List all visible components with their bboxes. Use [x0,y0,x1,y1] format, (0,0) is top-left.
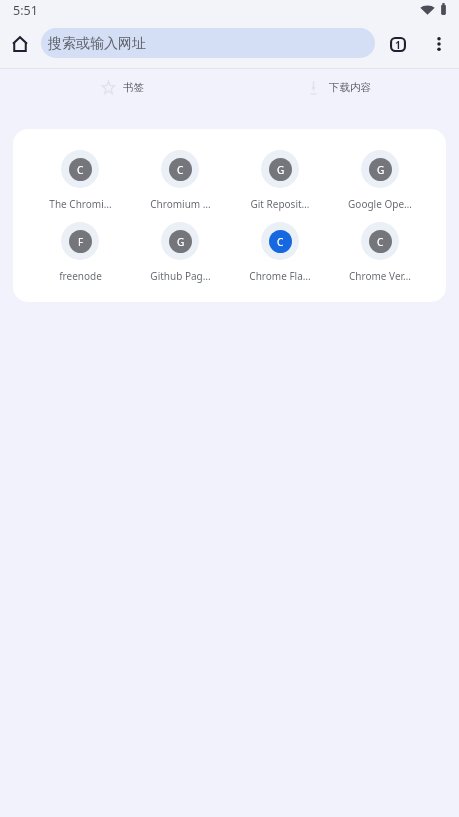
button[interactable]: Tabs [384,30,412,58]
button[interactable]: C [130,150,230,222]
button[interactable]: 书签 [103,78,144,98]
staticText: Github Pag… [150,269,211,283]
button[interactable]: C [230,222,330,294]
button[interactable]: G [230,150,330,222]
button[interactable]: 搜索或输入网址 [41,28,375,58]
staticText: 5:51 [13,2,38,19]
button[interactable]: 下载内容 [310,78,371,98]
staticText: 下载内容 [329,81,371,94]
staticText: C [377,235,384,249]
staticText: Google Ope… [348,197,412,211]
button[interactable]: C [330,222,430,294]
staticText: G [377,163,385,177]
staticText: Chrome Ver… [349,269,411,283]
staticText: C [277,235,284,249]
staticText: G [177,235,185,249]
staticText: Chromium … [150,197,211,211]
button[interactable]: C [30,150,130,222]
button[interactable]: More options [425,30,453,58]
staticText: C [177,163,184,177]
staticText: G [277,163,285,177]
button[interactable]: G [130,222,230,294]
button[interactable]: G [330,150,430,222]
staticText: 书签 [123,81,144,94]
button[interactable]: F [30,222,130,294]
staticText: Git Reposit… [250,197,310,211]
staticText: 1 [395,38,401,52]
staticText: 搜索或输入网址 [48,35,146,53]
staticText: freenode [59,269,102,283]
staticText: C [77,163,84,177]
staticText: F [78,235,84,249]
button[interactable]: Home [5,29,35,59]
staticText: The Chromi… [49,197,112,211]
staticText: Chrome Fla… [249,269,311,283]
